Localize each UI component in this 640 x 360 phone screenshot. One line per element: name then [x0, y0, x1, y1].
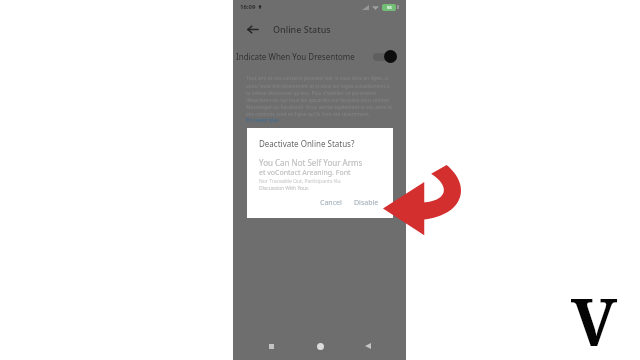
staticText: V — [571, 275, 618, 360]
button[interactable]: En savoir plus — [246, 117, 279, 124]
staticText: Cancel — [320, 198, 342, 208]
staticText: Nor Traceable Out, Participants Nu — [259, 178, 341, 185]
button[interactable]: Disable — [350, 196, 383, 210]
staticText: You Can Not Self Your Arms — [259, 157, 363, 168]
button[interactable]: Indicate When You Dresentome — [233, 44, 406, 68]
staticText: Deactivate Online Status? — [259, 138, 355, 149]
staticText: Online Status — [273, 23, 331, 35]
staticText: Discussion With Your. — [259, 185, 309, 192]
button[interactable]: Home — [310, 336, 330, 356]
button[interactable]: Recent apps — [261, 336, 281, 356]
staticText: Disable — [354, 198, 379, 208]
button[interactable]: Cancel — [316, 196, 346, 210]
staticText: 16:09 — [240, 3, 256, 11]
staticText: Indicate When You Dresentome — [236, 51, 355, 62]
staticText: Tout ami et vos contacts peuvent voir si… — [246, 75, 393, 117]
staticText: et voContact Areaning. Font — [259, 168, 351, 178]
staticText: 93 — [387, 5, 392, 10]
button[interactable]: Back — [241, 18, 263, 40]
button[interactable]: Back — [358, 336, 378, 356]
